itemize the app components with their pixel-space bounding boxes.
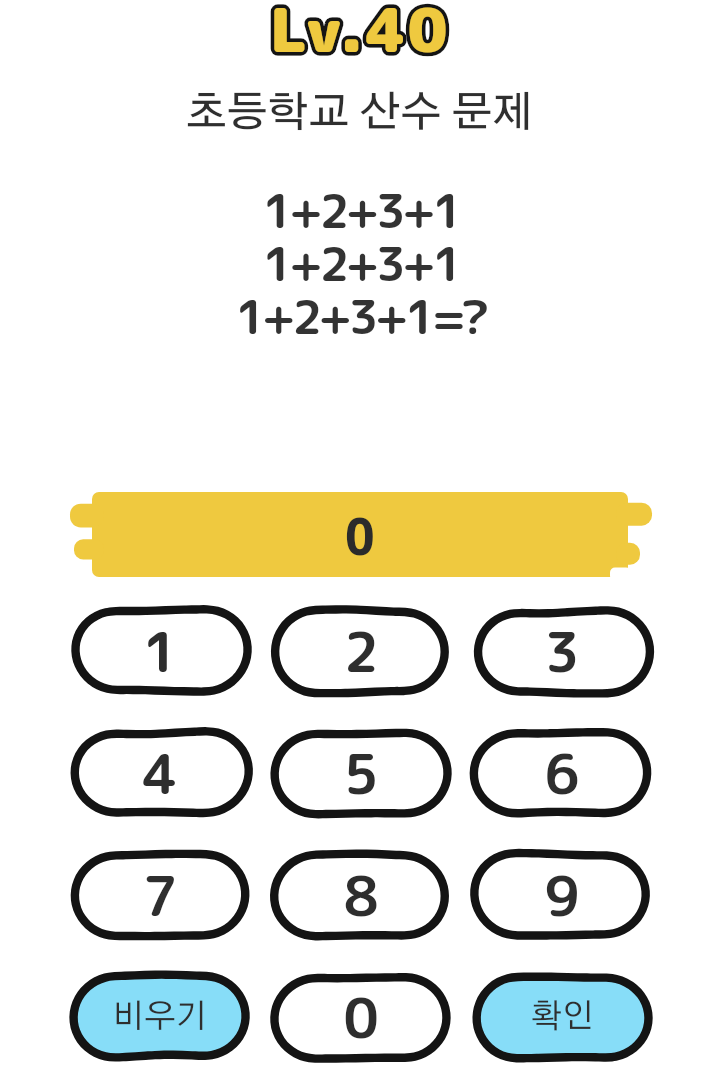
staticText: 1 — [142, 613, 178, 690]
staticText: 7 — [142, 857, 178, 934]
button[interactable]: 9 — [470, 849, 654, 942]
staticText: 2 — [343, 613, 379, 690]
staticText: Lv.40 — [270, 0, 451, 71]
staticText: 5 — [343, 735, 379, 812]
staticText: 0 — [343, 979, 379, 1056]
button[interactable]: 6 — [470, 727, 654, 820]
button[interactable]: 3 — [470, 605, 654, 698]
staticText: 1+2+3+1 1+2+3+1 1+2+3+1=? — [235, 177, 486, 349]
staticText: 9 — [544, 857, 580, 934]
staticText: 8 — [343, 857, 379, 934]
staticText: 비우기 — [112, 1001, 208, 1034]
staticText: 6 — [544, 735, 580, 812]
staticText: 확인 — [530, 1001, 594, 1034]
button[interactable]: 확인 — [470, 971, 654, 1064]
button[interactable]: 7 — [68, 849, 252, 942]
button[interactable]: 5 — [269, 727, 453, 820]
button[interactable]: 0 — [269, 971, 453, 1064]
staticText: 4 — [142, 735, 178, 812]
button[interactable]: 8 — [269, 849, 453, 942]
staticText: 초등학교 산수 문제 — [186, 92, 534, 134]
button[interactable]: 1 — [68, 605, 252, 698]
button[interactable]: 비우기 — [68, 971, 252, 1064]
button[interactable]: 2 — [269, 605, 453, 698]
staticText: 0 — [345, 499, 375, 570]
staticText: Lv.40 — [270, 0, 451, 71]
button[interactable]: Answer field — [68, 490, 652, 578]
button[interactable]: 4 — [68, 727, 252, 820]
staticText: 3 — [544, 613, 580, 690]
